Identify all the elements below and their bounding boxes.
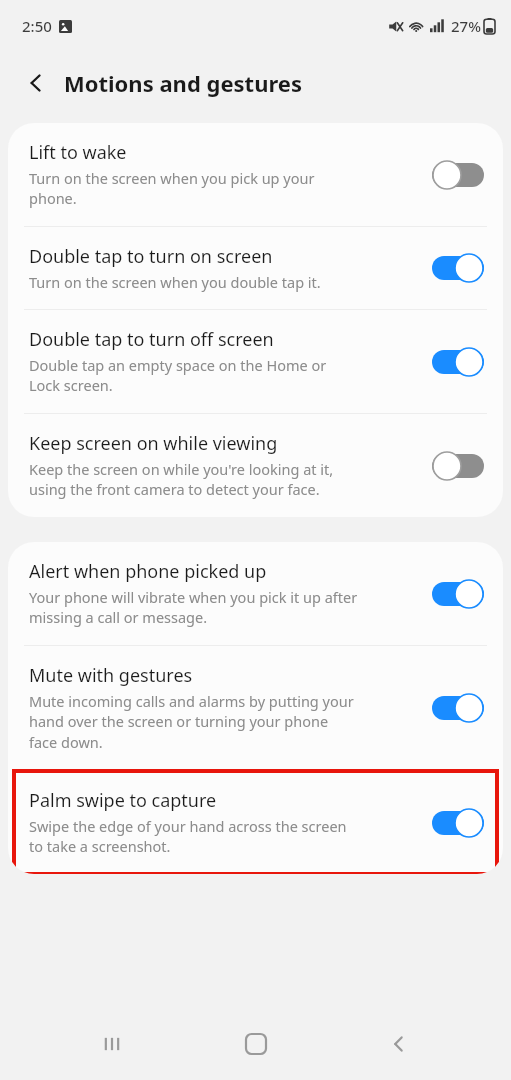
button[interactable]: Toggle off [427,154,489,196]
staticText: Lift to wake [29,140,127,165]
button[interactable]: Toggle on [427,247,489,289]
button[interactable]: Double tap to turn on screen [8,227,503,309]
staticText: Turn on the screen when you double tap i… [29,272,321,292]
staticText: Mute incoming calls and alarms by puttin… [29,691,354,753]
staticText: Double tap an empty space on the Home or… [29,355,327,396]
staticText: Keep screen on while viewing [29,431,278,456]
button[interactable]: Toggle on [427,341,489,383]
staticText: Motions and gestures [64,68,303,98]
staticText: Turn on the screen when you pick up your… [29,168,315,209]
button[interactable]: Mute with gestures [8,646,503,770]
button[interactable]: Keep screen on while viewing [8,414,503,517]
button[interactable]: Alert when phone picked up [8,542,503,645]
staticText: Mute with gestures [29,663,193,688]
staticText: Alert when phone picked up [29,559,267,584]
staticText: Swipe the edge of your hand across the s… [29,816,347,857]
button[interactable]: Back [12,59,60,107]
button[interactable]: Back [367,1012,431,1076]
button[interactable]: Toggle on [427,687,489,729]
button[interactable]: Toggle off [427,445,489,487]
staticText: 2:50 [22,16,52,36]
button[interactable]: Double tap to turn off screen [8,310,503,413]
button[interactable]: Home [224,1012,288,1076]
button[interactable]: Toggle on [427,573,489,615]
staticText: 27% [451,16,481,36]
staticText: Your phone will vibrate when you pick it… [29,587,358,628]
button[interactable]: Lift to wake [8,123,503,226]
staticText: Palm swipe to capture [29,788,217,813]
staticText: Keep the screen on while you're looking … [29,459,334,500]
staticText: Double tap to turn on screen [29,244,273,269]
button[interactable]: Palm swipe to capture [8,771,503,874]
button[interactable]: Recent apps [80,1012,144,1076]
staticText: Double tap to turn off screen [29,327,274,352]
button[interactable]: Toggle on [427,802,489,844]
